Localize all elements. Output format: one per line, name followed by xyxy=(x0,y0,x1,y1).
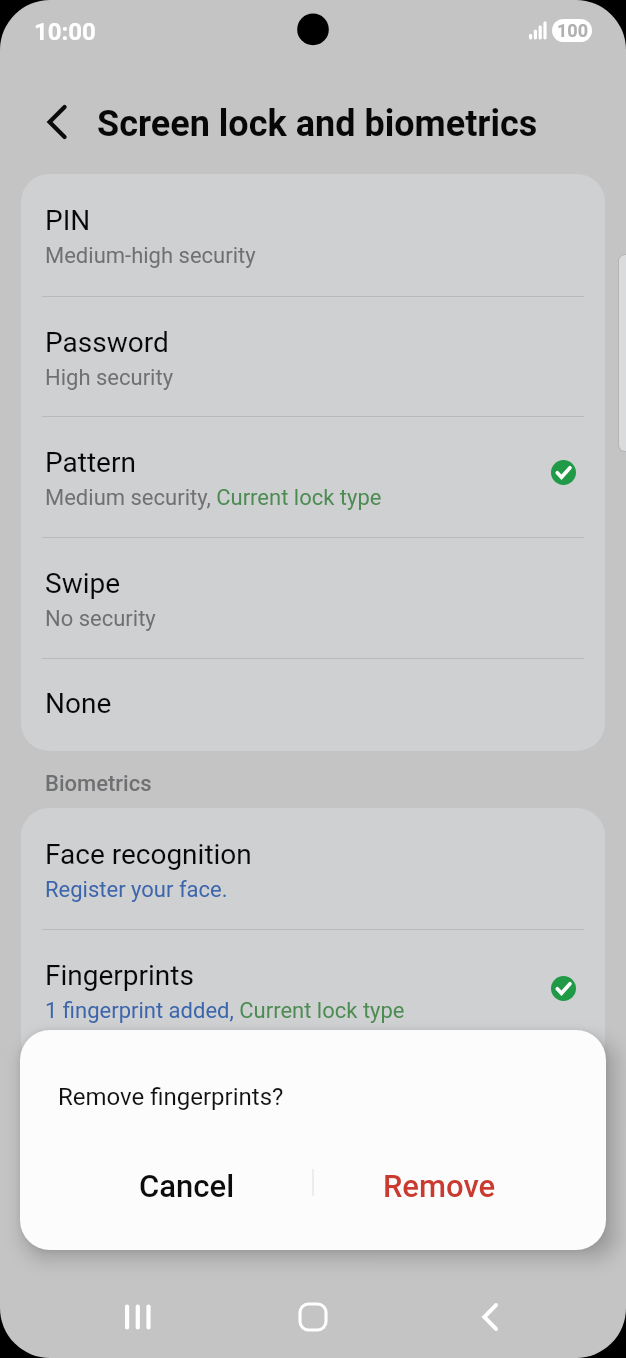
button[interactable]: Fingerprints xyxy=(21,929,605,1070)
button[interactable]: None xyxy=(21,658,605,751)
button[interactable]: Remove xyxy=(313,1149,606,1223)
staticText: Remove fingerprints? xyxy=(58,1083,284,1111)
staticText: None xyxy=(45,687,112,720)
button[interactable]: Back xyxy=(464,1291,516,1343)
staticText: Register your face. xyxy=(45,877,228,903)
button[interactable]: Pattern xyxy=(21,416,605,537)
staticText: Password xyxy=(45,326,169,359)
staticText: Medium security, Current lock type xyxy=(45,485,382,511)
staticText: Medium-high security xyxy=(45,243,256,269)
staticText: Cancel xyxy=(139,1168,235,1204)
staticText: PIN xyxy=(45,204,91,237)
button[interactable]: PIN xyxy=(21,174,605,296)
staticText: Biometrics xyxy=(45,771,152,797)
staticText: 100 xyxy=(557,20,588,41)
staticText: Pattern xyxy=(45,446,136,479)
staticText: 10:00 xyxy=(34,18,96,46)
button[interactable]: Home xyxy=(287,1291,339,1343)
staticText: Remove xyxy=(383,1168,496,1204)
staticText: Swipe xyxy=(45,567,121,600)
button[interactable]: Navigate up xyxy=(30,100,74,144)
staticText: 1 fingerprint added, Current lock type xyxy=(45,998,405,1024)
button[interactable]: Password xyxy=(21,296,605,416)
button[interactable]: Swipe xyxy=(21,537,605,658)
button[interactable]: Recents xyxy=(113,1291,165,1343)
staticText: Face recognition xyxy=(45,838,252,871)
button[interactable]: Face recognition xyxy=(21,808,605,929)
staticText: Screen lock and biometrics xyxy=(97,103,538,145)
button[interactable]: Cancel xyxy=(20,1149,313,1223)
staticText: No security xyxy=(45,606,156,632)
staticText: High security xyxy=(45,365,174,391)
staticText: Fingerprints xyxy=(45,959,194,992)
